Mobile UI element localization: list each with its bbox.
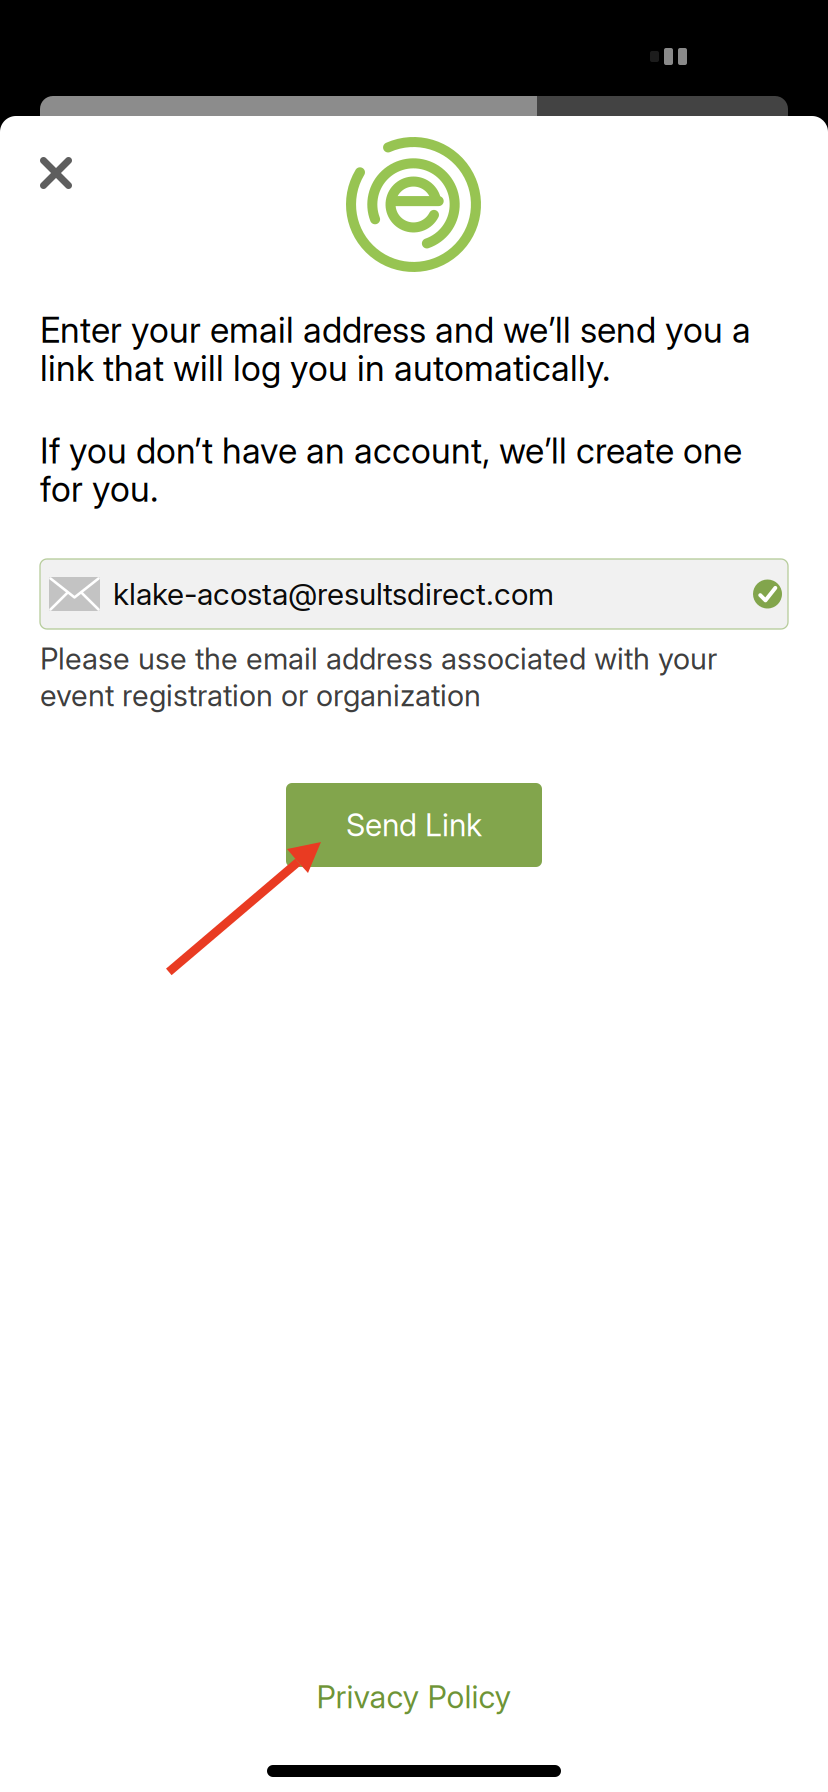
- button[interactable]: klake-acosta@resultsdirect.com: [40, 559, 788, 629]
- button[interactable]: Close: [24, 141, 88, 205]
- staticText: Send Link: [346, 806, 482, 843]
- button[interactable]: Send Link: [286, 783, 542, 867]
- staticText: Please use the email address associated …: [40, 641, 717, 713]
- staticText: If you don’t have an account, we’ll crea…: [40, 429, 742, 510]
- staticText: klake-acosta@resultsdirect.com: [113, 576, 554, 612]
- staticText: Enter your email address and we’ll send …: [40, 309, 751, 389]
- staticText: Privacy Policy: [316, 1678, 511, 1716]
- button[interactable]: Privacy Policy: [294, 1675, 534, 1719]
